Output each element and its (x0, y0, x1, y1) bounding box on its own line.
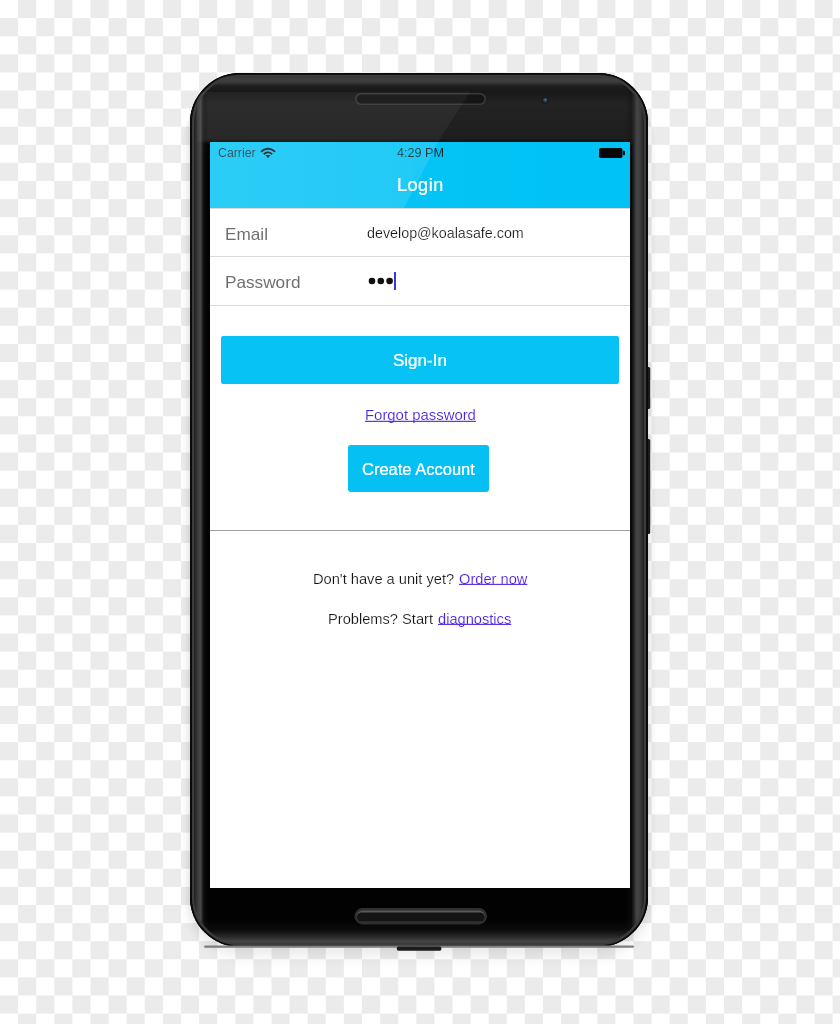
staticText: Forgot password (365, 407, 476, 424)
button[interactable]: Order now (459, 571, 528, 587)
button[interactable]: Password (210, 257, 630, 304)
staticText: Order now (459, 571, 528, 587)
staticText: diagnostics (438, 611, 512, 627)
staticText: Password (225, 272, 301, 291)
staticText: Problems? Start (328, 611, 438, 627)
staticText: 4:29 PM (397, 146, 444, 160)
button[interactable]: Sign-In (221, 336, 619, 384)
staticText: develop@koalasafe.com (367, 225, 524, 241)
staticText: Email (225, 224, 268, 243)
staticText: Sign-In (393, 351, 447, 370)
staticText: Login (397, 175, 444, 195)
button[interactable]: diagnostics (438, 611, 512, 627)
staticText: Create Account (362, 460, 475, 478)
button[interactable]: Create Account (348, 445, 489, 492)
button[interactable]: Forgot password (362, 405, 479, 426)
staticText: Carrier (218, 146, 256, 160)
staticText: Don't have a unit yet? (313, 571, 459, 587)
other: Battery (599, 148, 625, 158)
button[interactable]: Email (210, 209, 630, 256)
